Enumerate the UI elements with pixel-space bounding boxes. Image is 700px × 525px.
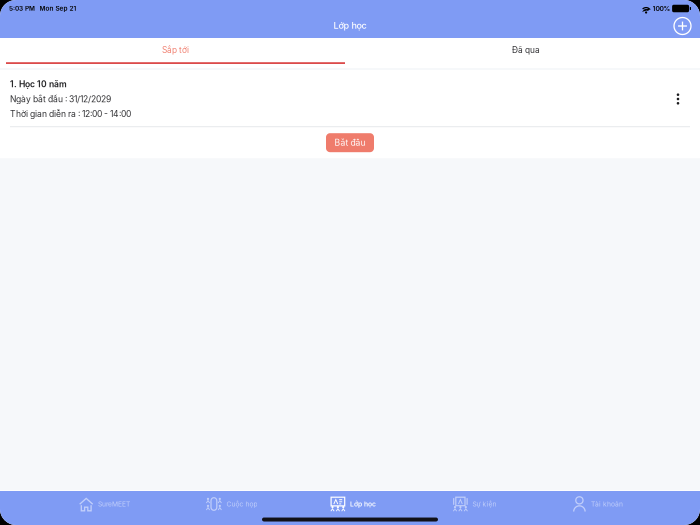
staticText: 5:03 PM <box>9 5 35 12</box>
staticText: Thời gian diễn ra : 12:00 - 14:00 <box>10 109 131 119</box>
staticText: Đã qua <box>512 45 540 55</box>
staticText: SureMEET <box>98 500 130 508</box>
staticText: Lớp học <box>350 500 376 508</box>
staticText: 1. Học 10 năm <box>10 79 67 89</box>
button[interactable]: SureMEET <box>75 492 134 516</box>
button[interactable]: Bắt đầu <box>326 133 374 152</box>
button[interactable]: Sự kiện <box>449 492 500 516</box>
staticText: Sự kiện <box>472 500 496 508</box>
staticText: 100% <box>653 4 671 13</box>
button[interactable]: Tài khoản <box>568 492 627 516</box>
button[interactable]: Lớp học <box>326 492 380 516</box>
button[interactable]: Cuộc họp <box>202 492 261 516</box>
staticText: Cuộc họp <box>226 500 257 508</box>
staticText: Ngày bắt đầu : 31/12/2029 <box>10 94 111 104</box>
button[interactable]: Đã qua <box>345 38 700 68</box>
staticText: Mon Sep 21 <box>39 5 76 12</box>
staticText: Lớp học <box>333 20 366 31</box>
button[interactable]: Sắp tới <box>0 38 345 68</box>
button[interactable]: Add class <box>665 17 700 38</box>
staticText: Bắt đầu <box>334 137 365 148</box>
staticText: Tài khoản <box>591 500 623 508</box>
staticText: Sắp tới <box>162 45 189 55</box>
button[interactable]: More options <box>666 79 690 109</box>
